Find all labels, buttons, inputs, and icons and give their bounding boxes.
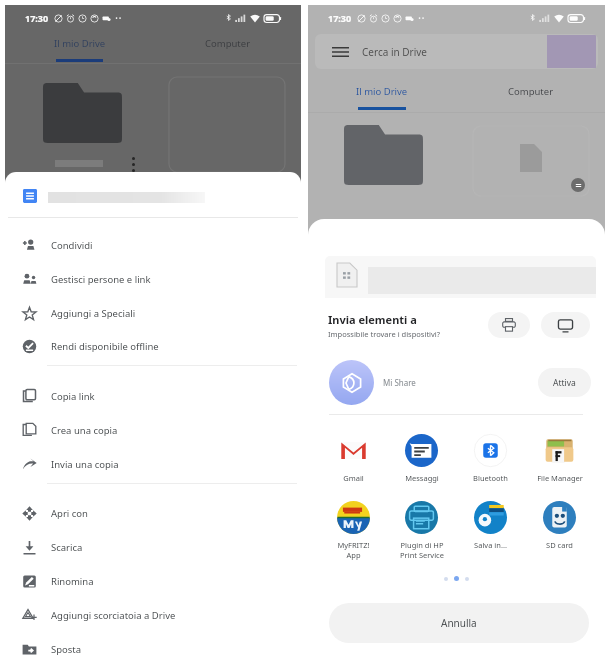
staticText: 17:30 — [25, 12, 49, 24]
button[interactable]: Plugin di HP Print Service — [387, 501, 456, 560]
button[interactable]: Bluetooth — [456, 434, 525, 483]
staticText: Gmail — [343, 473, 364, 483]
button[interactable]: Apri con — [5, 496, 301, 530]
staticText: Salva in... — [474, 540, 507, 550]
staticText: Rendi disponibile offline — [51, 340, 159, 353]
staticText: Condividi — [51, 239, 93, 252]
staticText: Il mio Drive — [54, 37, 106, 50]
staticText: Mi Share — [383, 377, 416, 388]
button[interactable]: Aggiungi a Speciali — [5, 296, 301, 330]
button[interactable]: Aggiungi scorciatoia a Drive — [5, 598, 301, 632]
staticText: Invia una copia — [51, 458, 119, 471]
button[interactable]: MyFRITZ! App — [319, 501, 387, 560]
staticText: Scarica — [51, 541, 83, 554]
button[interactable]: Scarica — [5, 530, 301, 564]
staticText: Sposta — [51, 643, 82, 656]
staticText: Copia link — [51, 390, 95, 403]
button[interactable]: File Manager — [525, 434, 594, 483]
button[interactable]: Attiva — [538, 368, 591, 397]
button[interactable]: Salva in... — [456, 501, 525, 550]
button[interactable]: Messaggi — [387, 434, 456, 483]
staticText: Impossibile trovare i dispositivi? — [328, 329, 441, 339]
staticText: Plugin di HP Print Service — [400, 540, 444, 560]
button[interactable]: Condividi — [5, 228, 301, 262]
button[interactable]: Annulla — [329, 603, 589, 643]
staticText: Apri con — [51, 507, 88, 520]
staticText: Cerca in Drive — [362, 45, 427, 59]
staticText: File Manager — [537, 473, 583, 483]
button[interactable]: Print — [488, 312, 530, 338]
staticText: Messaggi — [405, 473, 439, 483]
staticText: Computer — [205, 37, 251, 50]
button[interactable]: Crea una copia — [5, 413, 301, 447]
staticText: Bluetooth — [473, 473, 508, 483]
staticText: MyFRITZ! App — [337, 540, 370, 560]
staticText: Computer — [508, 85, 554, 98]
button[interactable]: Rendi disponibile offline — [5, 329, 301, 363]
button[interactable]: Rinomina — [5, 564, 301, 598]
button[interactable]: Sposta — [5, 632, 301, 666]
staticText: Aggiungi scorciatoia a Drive — [51, 609, 176, 622]
button[interactable]: Cerca in Drive — [315, 34, 598, 69]
button[interactable]: Gmail — [319, 434, 387, 483]
staticText: Aggiungi a Speciali — [51, 307, 136, 320]
button[interactable]: SD card — [525, 501, 594, 550]
staticText: 17:30 — [328, 12, 352, 24]
staticText: Il mio Drive — [356, 85, 408, 98]
staticText: SD card — [546, 540, 573, 550]
staticText: Crea una copia — [51, 424, 118, 437]
button[interactable]: Cast to screen — [541, 312, 590, 338]
button[interactable]: Mi Share — [308, 359, 605, 405]
staticText: Attiva — [553, 377, 576, 389]
button[interactable]: Gestisci persone e link — [5, 262, 301, 296]
staticText: Invia elementi a — [328, 312, 417, 327]
button[interactable]: Copia link — [5, 379, 301, 413]
staticText: Annulla — [441, 616, 477, 630]
button[interactable]: Invia una copia — [5, 447, 301, 481]
staticText: Rinomina — [51, 575, 94, 588]
staticText: Gestisci persone e link — [51, 273, 151, 286]
